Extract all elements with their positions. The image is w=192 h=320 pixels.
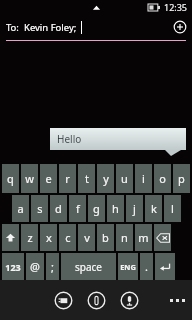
staticText: @ [30, 259, 40, 274]
staticText: g [93, 201, 100, 216]
button[interactable]: Attach [87, 291, 106, 310]
button[interactable]: w [21, 164, 38, 193]
button[interactable]: a [12, 195, 29, 222]
button[interactable]: @ [26, 253, 44, 280]
button[interactable]: i [135, 164, 152, 193]
staticText: k [151, 201, 157, 216]
staticText: z [27, 230, 33, 245]
button[interactable]: y [97, 164, 114, 193]
staticText: f [76, 201, 80, 216]
button[interactable]: h [107, 195, 124, 222]
staticText: x [46, 230, 52, 245]
button[interactable]: . [140, 253, 153, 280]
button[interactable]: To: [0, 14, 192, 40]
staticText: n [121, 230, 128, 245]
button[interactable]: z [21, 224, 38, 251]
staticText: y [103, 171, 109, 186]
staticText: r [65, 171, 70, 186]
staticText: ENG [120, 262, 136, 272]
staticText: v [84, 230, 90, 245]
staticText: 123 [5, 261, 21, 273]
button[interactable]: x [40, 224, 57, 251]
button[interactable]: k [145, 195, 162, 222]
button[interactable]: f [69, 195, 86, 222]
button[interactable]: 123 [2, 253, 24, 280]
button[interactable]: Voice input [120, 291, 139, 310]
staticText: j [133, 201, 136, 216]
button[interactable]: j [126, 195, 143, 222]
button[interactable]: u [116, 164, 133, 193]
button[interactable]: space [61, 253, 116, 280]
button[interactable]: d [50, 195, 67, 222]
staticText: b [102, 230, 109, 245]
staticText: w [25, 171, 34, 186]
staticText: u [121, 171, 128, 186]
staticText: a [17, 201, 24, 216]
staticText: e [45, 171, 52, 186]
button[interactable]: v [78, 224, 95, 251]
button[interactable]: b [97, 224, 114, 251]
staticText: d [55, 201, 62, 216]
staticText: t [85, 171, 89, 186]
staticText: l [171, 201, 174, 216]
button[interactable]: n [116, 224, 133, 251]
staticText: space [75, 260, 102, 274]
staticText: q [7, 171, 14, 186]
staticText: o [159, 171, 166, 186]
button[interactable]: ENG [118, 253, 138, 280]
button[interactable]: q [2, 164, 19, 193]
button[interactable]: Add recipient [173, 20, 187, 34]
button[interactable]: g [88, 195, 105, 222]
staticText: i [142, 171, 145, 186]
staticText: s [37, 201, 43, 216]
staticText: p [178, 171, 185, 186]
button[interactable]: p [173, 164, 190, 193]
button[interactable]: Send message [54, 291, 73, 310]
staticText: ; [51, 259, 54, 274]
staticText: Kevin Foley; [24, 21, 77, 34]
button[interactable]: l [164, 195, 181, 222]
staticText: h [112, 201, 119, 216]
button[interactable]: Enter [155, 253, 175, 280]
staticText: Hello [57, 132, 82, 146]
button[interactable]: ; [46, 253, 59, 280]
button[interactable]: Hello [50, 128, 186, 150]
staticText: m [138, 230, 149, 245]
button[interactable]: t [78, 164, 95, 193]
button[interactable]: c [59, 224, 76, 251]
button[interactable]: s [31, 195, 48, 222]
button[interactable]: r [59, 164, 76, 193]
staticText: . [145, 259, 148, 274]
button[interactable]: Shift [2, 224, 19, 251]
staticText: 12:35 [164, 1, 188, 13]
staticText: To: [6, 21, 19, 34]
staticText: c [65, 230, 71, 245]
button[interactable]: m [135, 224, 152, 251]
button[interactable]: Backspace [154, 224, 171, 251]
button[interactable]: e [40, 164, 57, 193]
button[interactable]: o [154, 164, 171, 193]
